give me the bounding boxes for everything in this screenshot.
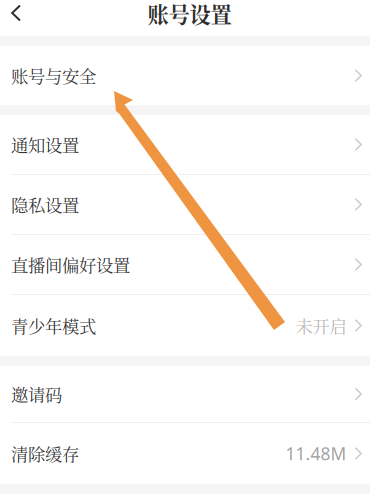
staticText: 隐私设置 [11, 192, 79, 217]
button[interactable]: 直播间偏好设置 [0, 235, 370, 294]
staticText: 账号设置 [147, 0, 231, 29]
button[interactable]: Back [0, 0, 35, 36]
staticText: 账号与安全 [11, 63, 96, 88]
button[interactable]: 青少年模式 [0, 295, 370, 356]
staticText: 清除缓存 [11, 441, 79, 466]
staticText: 直播间偏好设置 [11, 252, 130, 277]
button[interactable]: 账号与安全 [0, 46, 370, 105]
staticText: 通知设置 [11, 132, 79, 157]
button[interactable]: 隐私设置 [0, 175, 370, 234]
staticText: 邀请码 [11, 381, 62, 406]
button[interactable]: 清除缓存 [0, 423, 370, 484]
button[interactable]: 通知设置 [0, 115, 370, 174]
button[interactable]: 邀请码 [0, 366, 370, 422]
staticText: 未开启 [296, 313, 347, 338]
staticText: 11.48M [286, 442, 347, 465]
staticText: 青少年模式 [11, 313, 96, 338]
